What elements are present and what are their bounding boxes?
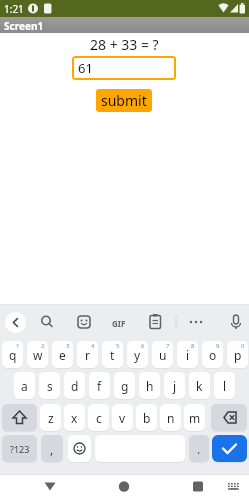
button[interactable]: s [39, 372, 60, 399]
button[interactable] [186, 476, 210, 498]
staticText: h [146, 378, 154, 394]
button[interactable] [2, 404, 37, 431]
staticText: 4 [91, 342, 95, 350]
button[interactable]: m [184, 404, 205, 431]
staticText: GIF [112, 318, 126, 329]
staticText: 61 [78, 59, 93, 77]
staticText: o [209, 347, 217, 363]
button[interactable]: p [227, 341, 248, 368]
button[interactable]: r [77, 341, 98, 368]
button[interactable]: o [202, 341, 223, 368]
button[interactable]: f [89, 372, 110, 399]
button[interactable]: d [64, 372, 85, 399]
button[interactable]: l [214, 372, 235, 399]
button[interactable]: j [164, 372, 185, 399]
staticText: q [9, 347, 17, 363]
staticText: 1:21 [4, 2, 24, 16]
staticText: d [71, 378, 79, 394]
button[interactable] [211, 404, 247, 431]
button[interactable]: v [112, 404, 133, 431]
staticText: n [167, 410, 175, 426]
staticText: 5 [116, 342, 120, 350]
staticText: 2 [41, 342, 45, 350]
staticText: l [223, 378, 227, 394]
staticText: g [121, 378, 129, 394]
staticText: submit [101, 91, 147, 110]
button[interactable]: 61 [72, 56, 176, 80]
button[interactable]: e [52, 341, 73, 368]
staticText: 0 [241, 342, 245, 350]
staticText: r [85, 347, 90, 363]
staticText: i [186, 347, 190, 363]
button[interactable]: ?123 [2, 435, 37, 462]
staticText: 3 [66, 342, 70, 350]
button[interactable]: g [114, 372, 135, 399]
staticText: k [196, 378, 203, 394]
button[interactable]: . [189, 435, 209, 462]
staticText: Screen1 [4, 19, 44, 33]
button[interactable]: b [136, 404, 157, 431]
button[interactable]: h [139, 372, 160, 399]
staticText: 9 [216, 342, 220, 350]
button[interactable] [68, 435, 91, 462]
button[interactable]: q [2, 341, 23, 368]
button[interactable] [38, 476, 62, 498]
staticText: j [173, 378, 177, 394]
button[interactable]: , [41, 435, 63, 462]
staticText: w [33, 347, 43, 363]
staticText: ?123 [10, 443, 30, 455]
staticText: 8 [191, 342, 195, 350]
staticText: 1 [16, 342, 20, 350]
button[interactable]: submit [96, 89, 152, 112]
staticText: x [71, 410, 78, 426]
button[interactable] [212, 435, 247, 462]
staticText: u [159, 347, 167, 363]
staticText: , [50, 441, 54, 457]
staticText: y [134, 347, 141, 363]
button[interactable]: t [102, 341, 123, 368]
staticText: a [21, 378, 28, 394]
button[interactable]: a [14, 372, 35, 399]
button[interactable] [5, 312, 26, 333]
staticText: . [197, 441, 201, 457]
button[interactable]: k [189, 372, 210, 399]
button[interactable]: n [160, 404, 181, 431]
button[interactable]: u [152, 341, 173, 368]
staticText: s [47, 378, 53, 394]
staticText: t [110, 347, 115, 363]
staticText: 28 + 33 = ? [90, 35, 159, 54]
button[interactable]: i [177, 341, 198, 368]
staticText: 7 [166, 342, 170, 350]
button[interactable] [112, 476, 136, 498]
staticText: v [119, 410, 126, 426]
button[interactable]: z [40, 404, 61, 431]
staticText: p [234, 347, 242, 363]
staticText: e [59, 347, 66, 363]
button[interactable]: c [88, 404, 109, 431]
button[interactable]: y [127, 341, 148, 368]
button[interactable]: w [27, 341, 48, 368]
staticText: 6 [141, 342, 145, 350]
button[interactable]: x [64, 404, 85, 431]
staticText: m [189, 410, 201, 426]
button[interactable] [224, 476, 244, 498]
staticText: z [48, 410, 54, 426]
staticText: b [143, 410, 151, 426]
staticText: c [96, 410, 102, 426]
staticText: f [97, 378, 102, 394]
